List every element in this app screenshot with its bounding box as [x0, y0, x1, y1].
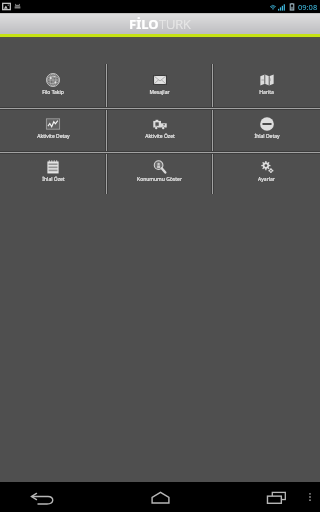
button[interactable]: Harita — [213, 64, 320, 108]
staticText: 09:08 — [298, 2, 318, 12]
button[interactable]: Home — [136, 482, 185, 512]
staticText: Filo Takip — [42, 89, 64, 96]
button[interactable]: Filo Takip — [0, 64, 106, 108]
staticText: Aktivite Özet — [145, 133, 175, 140]
staticText: Harita — [259, 89, 274, 96]
staticText: İhlal Detay — [254, 133, 280, 140]
button[interactable]: Ayarlar — [213, 151, 320, 194]
button[interactable]: Mesajlar — [106, 64, 213, 108]
staticText: Konumumu Göster — [137, 176, 182, 183]
staticText: FİLO — [129, 15, 159, 33]
button[interactable]: Konumumu Göster — [106, 151, 213, 194]
staticText: TURK — [159, 15, 191, 33]
button[interactable]: Back — [18, 482, 67, 512]
staticText: İhlal Özet — [42, 176, 65, 183]
staticText: Ayarlar — [258, 176, 275, 183]
staticText: Mesajlar — [149, 89, 170, 96]
button[interactable]: Recent apps — [252, 482, 301, 512]
button[interactable]: More options — [299, 482, 320, 512]
button[interactable]: Aktivite Özet — [106, 108, 213, 151]
staticText: Aktivite Detay — [37, 133, 70, 140]
button[interactable]: İhlal Özet — [0, 151, 106, 194]
button[interactable]: Aktivite Detay — [0, 108, 106, 151]
button[interactable]: İhlal Detay — [213, 108, 320, 151]
